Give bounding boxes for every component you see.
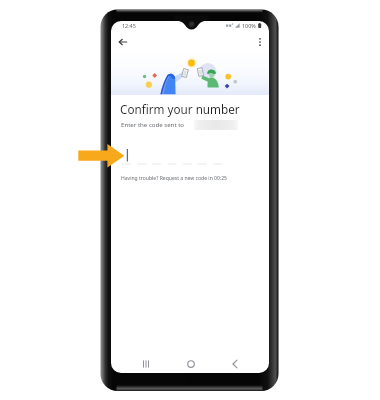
- staticText: Enter the code sent to: [121, 120, 185, 128]
- button[interactable]: More options: [253, 35, 267, 49]
- button[interactable]: Code entry field: [120, 146, 234, 168]
- button[interactable]: Back: [116, 35, 130, 49]
- button[interactable]: Back: [226, 355, 244, 373]
- staticText: Confirm your number: [120, 101, 240, 117]
- button[interactable]: Recent apps: [137, 355, 155, 373]
- staticText: 12:45: [122, 22, 136, 29]
- staticText: 100%: [242, 22, 256, 29]
- button[interactable]: Home: [182, 355, 200, 373]
- button[interactable]: Having trouble? Request a new code in 00…: [121, 175, 227, 182]
